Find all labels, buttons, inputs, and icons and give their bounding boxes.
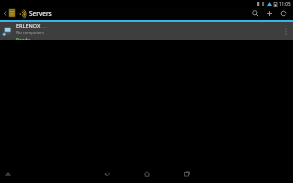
button[interactable]: Search [248, 7, 262, 20]
staticText: Ready [16, 37, 31, 40]
button[interactable]: Refresh [276, 7, 290, 20]
button[interactable]: Back [100, 167, 114, 181]
button[interactable]: Navigate up [3, 10, 7, 17]
button[interactable]: Keyboard [3, 169, 12, 178]
staticText: ... [43, 23, 47, 29]
button[interactable]: Add server [262, 7, 276, 20]
button[interactable]: Home [140, 167, 154, 181]
button[interactable]: More options [282, 22, 290, 40]
button[interactable]: ERLENOX [0, 22, 293, 40]
staticText: No computers [16, 30, 45, 36]
staticText: ERLENOX [16, 22, 41, 29]
button[interactable]: Recent apps [180, 167, 194, 181]
staticText: Servers [29, 9, 52, 18]
staticText: 11:05 [279, 1, 291, 7]
